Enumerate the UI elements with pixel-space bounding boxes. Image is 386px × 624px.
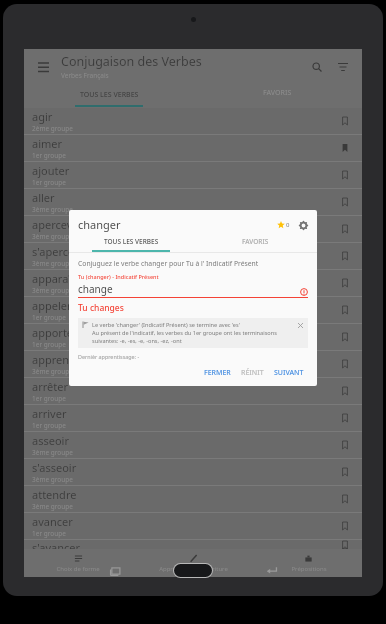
button[interactable]: Favorite bbox=[336, 540, 354, 549]
staticText: 1er groupe bbox=[32, 394, 66, 403]
button[interactable]: Favorite bbox=[336, 193, 354, 211]
button[interactable]: Favorite bbox=[336, 328, 354, 346]
staticText: aimer bbox=[32, 136, 63, 151]
staticText: arrêter bbox=[32, 379, 68, 394]
button[interactable]: Favorite bbox=[336, 166, 354, 184]
button[interactable]: apprendre bbox=[24, 351, 362, 377]
staticText: Apprentissage d'écriture bbox=[159, 565, 228, 573]
button[interactable]: Navigation menu bbox=[32, 56, 54, 78]
staticText: appeler bbox=[32, 298, 72, 313]
button[interactable]: aimer bbox=[24, 135, 362, 161]
button[interactable]: Favorite bbox=[336, 220, 354, 238]
staticText: arriver bbox=[32, 406, 67, 421]
staticText: s'avancer bbox=[32, 540, 81, 549]
button[interactable]: Close hint bbox=[296, 321, 305, 330]
staticText: 1er groupe bbox=[32, 421, 66, 430]
button[interactable]: Favorite bbox=[336, 247, 354, 265]
button[interactable]: Favorite bbox=[336, 436, 354, 454]
staticText: Tu changes bbox=[78, 302, 124, 314]
staticText: suivantes: -e, -es, -e, -ons, -ez, -ont bbox=[92, 337, 182, 345]
staticText: 2ème groupe bbox=[32, 124, 73, 133]
staticText: apercevoir bbox=[32, 217, 87, 232]
button[interactable]: TOUS LES VERBES bbox=[69, 237, 193, 252]
staticText: apprendre bbox=[32, 352, 87, 367]
staticText: FAVORIS bbox=[242, 237, 269, 246]
button[interactable]: Favorite bbox=[336, 112, 354, 130]
button[interactable]: attendre bbox=[24, 486, 362, 512]
button[interactable]: Favorite bbox=[336, 409, 354, 427]
button[interactable]: 0 bbox=[275, 221, 292, 229]
staticText: change bbox=[78, 282, 300, 296]
staticText: TOUS LES VERBES bbox=[80, 90, 139, 100]
button[interactable]: Apprentissage d'écriture bbox=[132, 549, 255, 577]
staticText: attendre bbox=[32, 487, 77, 502]
button[interactable]: s'avancer bbox=[24, 540, 362, 549]
staticText: asseoir bbox=[32, 433, 69, 448]
staticText: Le verbe 'changer' (Indicatif Présent) s… bbox=[92, 321, 240, 329]
button[interactable]: s'asseoir bbox=[24, 459, 362, 485]
button[interactable]: avancer bbox=[24, 513, 362, 539]
staticText: Tu (changer) - Indicatif Présent bbox=[78, 273, 159, 280]
button[interactable]: appeler bbox=[24, 297, 362, 323]
button[interactable]: TOUS LES VERBES bbox=[24, 84, 193, 108]
button[interactable]: Prépositions bbox=[255, 549, 362, 577]
button[interactable]: Recent apps bbox=[67, 559, 163, 581]
staticText: RÉINIT bbox=[241, 368, 264, 378]
button[interactable]: Favorite bbox=[336, 517, 354, 535]
button[interactable]: Choix de forme bbox=[24, 549, 132, 577]
staticText: 1er groupe bbox=[32, 313, 66, 322]
staticText: 3ème groupe bbox=[32, 502, 73, 511]
staticText: agir bbox=[32, 109, 53, 124]
staticText: FAVORIS bbox=[263, 88, 292, 98]
button[interactable]: SUIVANT bbox=[269, 366, 309, 380]
button[interactable]: asseoir bbox=[24, 432, 362, 458]
button[interactable]: s'apercevoir bbox=[24, 243, 362, 269]
staticText: 1er groupe bbox=[32, 178, 66, 187]
staticText: apporter bbox=[32, 325, 78, 340]
button[interactable]: Sort bbox=[332, 56, 354, 78]
button[interactable]: Favorite bbox=[336, 301, 354, 319]
button[interactable]: Home bbox=[163, 559, 223, 581]
staticText: 3ème groupe bbox=[32, 205, 73, 214]
staticText: Verbes Français bbox=[61, 71, 109, 80]
staticText: FERMER bbox=[204, 368, 231, 378]
staticText: avancer bbox=[32, 514, 73, 529]
button[interactable]: Settings bbox=[296, 218, 310, 232]
button[interactable]: Favorite bbox=[336, 382, 354, 400]
staticText: 3ème groupe bbox=[32, 259, 73, 268]
staticText: TOUS LES VERBES bbox=[104, 237, 159, 246]
button[interactable]: aller bbox=[24, 189, 362, 215]
staticText: Conjuguez le verbe changer pour Tu à l' … bbox=[78, 259, 259, 268]
staticText: apparaître bbox=[32, 271, 86, 286]
button[interactable]: Favorite bbox=[336, 139, 354, 157]
staticText: 3ème groupe bbox=[32, 448, 73, 457]
staticText: Choix de forme bbox=[56, 565, 100, 573]
staticText: 1er groupe bbox=[32, 151, 66, 160]
staticText: Conjugaison des Verbes bbox=[61, 53, 202, 70]
staticText: Au présent de l'indicatif, les verbes du… bbox=[92, 329, 277, 337]
button[interactable]: Search bbox=[306, 56, 328, 78]
button[interactable]: apparaître bbox=[24, 270, 362, 296]
button[interactable]: apporter bbox=[24, 324, 362, 350]
button[interactable]: agir bbox=[24, 108, 362, 134]
staticText: 3ème groupe bbox=[32, 475, 73, 484]
button[interactable]: Favorite bbox=[336, 490, 354, 508]
button[interactable]: apercevoir bbox=[24, 216, 362, 242]
button[interactable]: arriver bbox=[24, 405, 362, 431]
staticText: 3ème groupe bbox=[32, 286, 73, 295]
button[interactable]: arrêter bbox=[24, 378, 362, 404]
button[interactable]: RÉINIT bbox=[236, 366, 269, 380]
button[interactable]: FERMER bbox=[199, 366, 236, 380]
button[interactable]: Back bbox=[223, 559, 319, 581]
staticText: Dernièr apprentissage: - bbox=[78, 353, 140, 360]
staticText: Prépositions bbox=[291, 565, 327, 573]
button[interactable]: Favorite bbox=[336, 274, 354, 292]
staticText: ajouter bbox=[32, 163, 70, 178]
staticText: 0 bbox=[286, 221, 290, 229]
button[interactable]: ajouter bbox=[24, 162, 362, 188]
button[interactable]: Favorite bbox=[336, 463, 354, 481]
staticText: 3ème groupe bbox=[32, 367, 73, 376]
button[interactable]: FAVORIS bbox=[193, 237, 317, 252]
button[interactable]: Favorite bbox=[336, 355, 354, 373]
